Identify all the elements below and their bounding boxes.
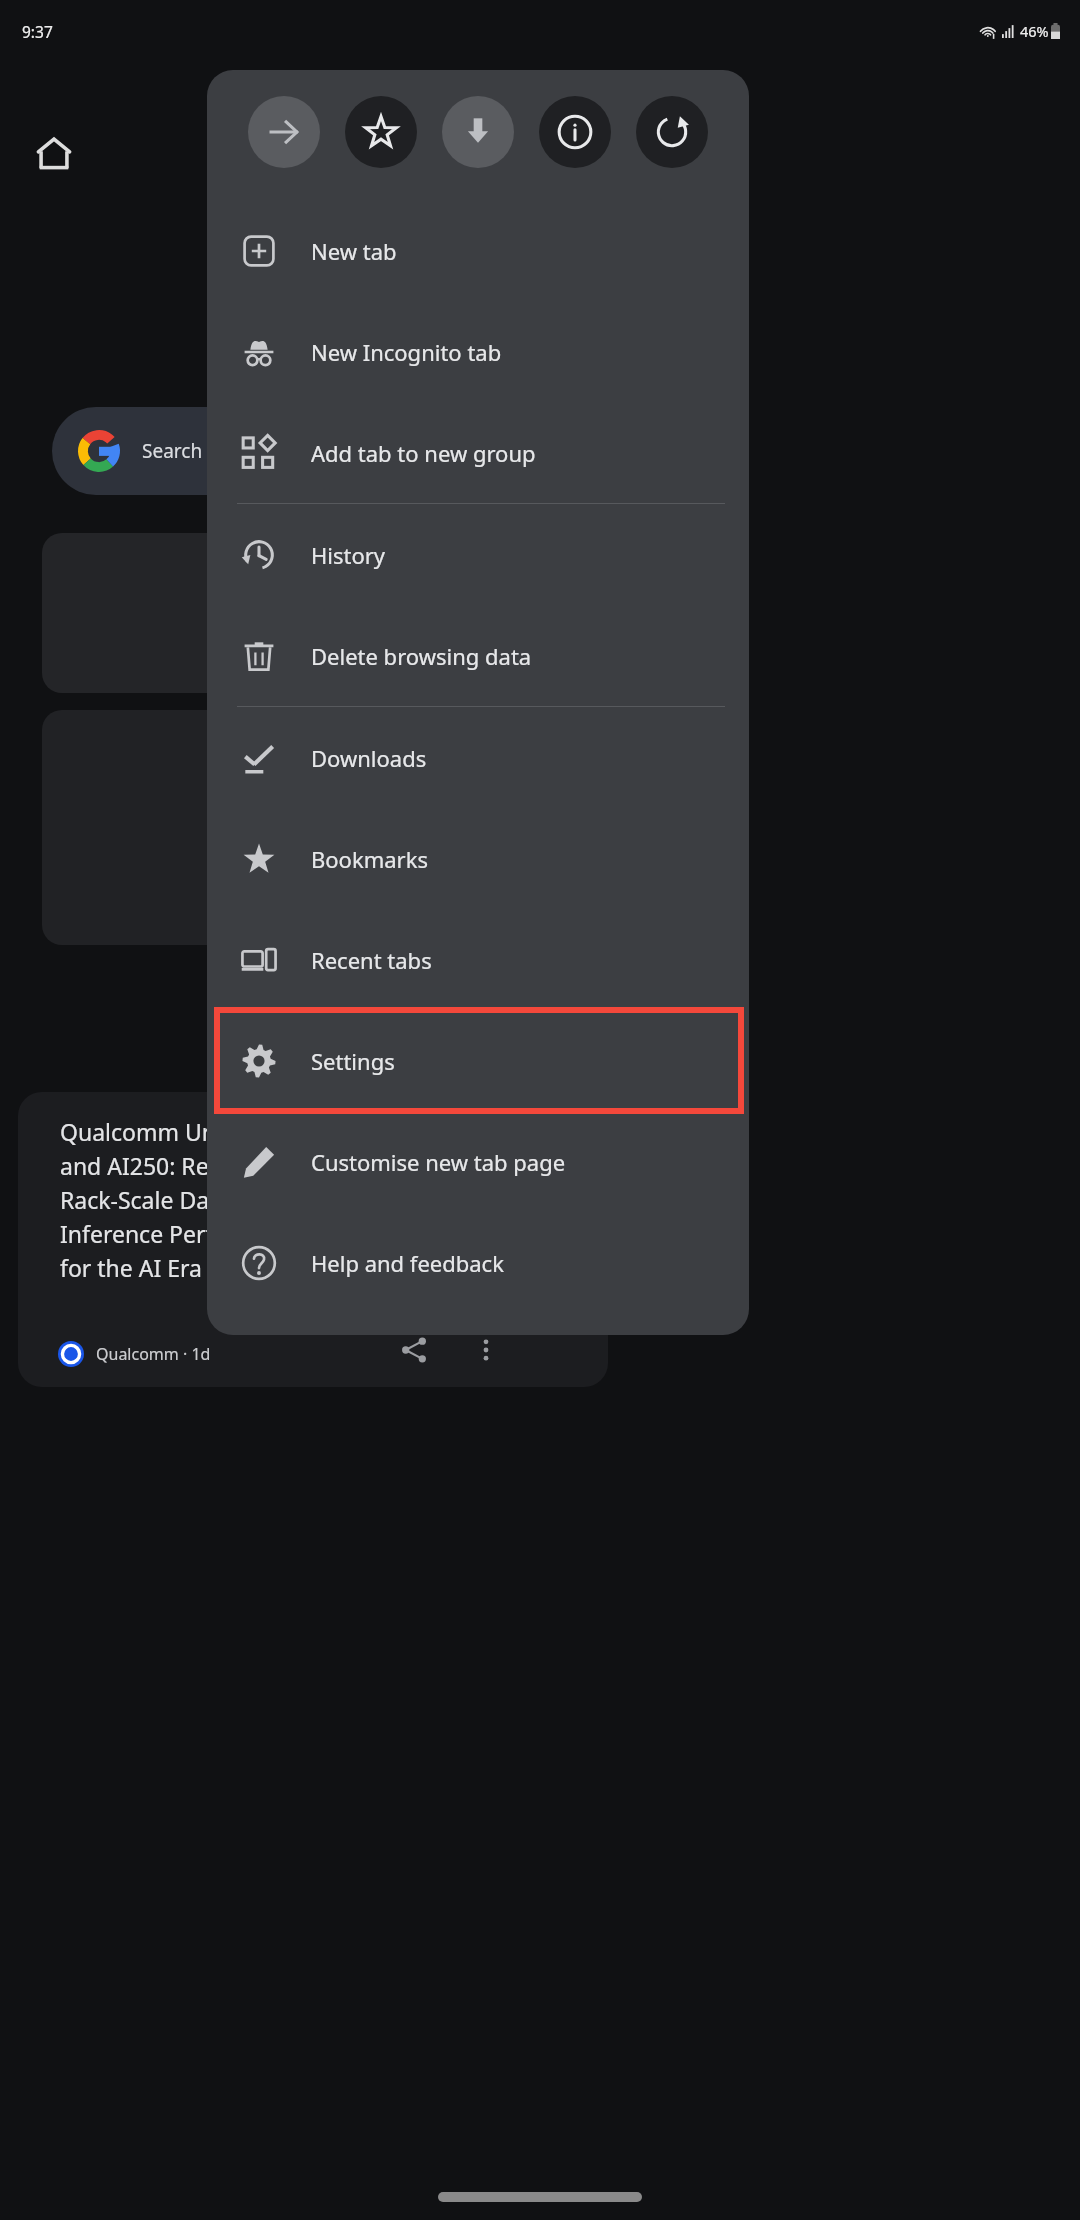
button[interactable]: Reload (636, 96, 708, 168)
button[interactable]: Share (390, 1326, 438, 1374)
button[interactable]: Customise new tab page (207, 1111, 749, 1212)
button[interactable]: Qualcomm Unveils AI200 and AI250: Redefi… (18, 1092, 608, 1387)
staticText: Bookmarks (311, 844, 428, 874)
button[interactable]: History (207, 504, 749, 605)
staticText: 46% (1020, 21, 1049, 41)
button[interactable]: Recent tabs (207, 909, 749, 1010)
button[interactable]: Help and feedback (207, 1212, 749, 1313)
staticText: Settings (311, 1046, 395, 1076)
button[interactable]: Delete browsing data (207, 605, 749, 706)
staticText: Downloads (311, 743, 427, 773)
button[interactable]: Bookmark (345, 96, 417, 168)
button[interactable]: New tab (207, 200, 749, 301)
button[interactable]: Page info (539, 96, 611, 168)
staticText: Qualcomm · 1d (96, 1343, 211, 1365)
button[interactable]: New Incognito tab (207, 301, 749, 402)
button[interactable]: Bookmarks (207, 808, 749, 909)
staticText: Customise new tab page (311, 1147, 566, 1177)
staticText: New tab (311, 236, 397, 266)
button[interactable]: Add tab to new group (207, 402, 749, 503)
staticText: Help and feedback (311, 1248, 504, 1278)
button[interactable]: More options (462, 1326, 510, 1374)
staticText: 9:37 (22, 21, 53, 42)
button[interactable]: Settings (207, 1010, 749, 1111)
staticText: Qualcomm Unveils AI200 and AI250: Redefi… (60, 1116, 332, 1283)
button[interactable]: Home (28, 128, 80, 180)
staticText: Search (142, 438, 203, 464)
button[interactable]: Forward (248, 96, 320, 168)
button[interactable]: Downloads (207, 707, 749, 808)
button[interactable]: Search (52, 407, 352, 495)
staticText: Recent tabs (311, 945, 432, 975)
button[interactable]: Download page (442, 96, 514, 168)
staticText: New Incognito tab (311, 337, 502, 367)
staticText: Add tab to new group (311, 438, 536, 468)
staticText: Delete browsing data (311, 641, 532, 671)
staticText: History (311, 540, 386, 570)
